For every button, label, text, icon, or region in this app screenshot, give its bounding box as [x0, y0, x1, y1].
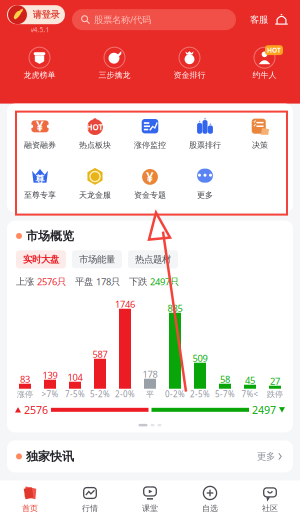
- staticText: 独家快讯: [26, 449, 74, 464]
- staticText: 587: [92, 348, 107, 360]
- staticText: 热点板块: [79, 140, 111, 150]
- staticText: 7%<: [241, 389, 258, 399]
- staticText: 83: [20, 373, 30, 385]
- staticText: 实时大盘: [23, 254, 59, 265]
- button[interactable]: 实时大盘: [16, 250, 66, 268]
- staticText: 至尊专享: [24, 190, 56, 200]
- staticText: 尊: [35, 173, 44, 185]
- staticText: 热点题材: [135, 254, 171, 265]
- staticText: 平盘: [66, 276, 96, 287]
- staticText: 2576: [24, 403, 48, 417]
- staticText: 融资融券: [24, 140, 56, 150]
- button[interactable]: 课堂: [120, 480, 180, 518]
- staticText: 跌停: [267, 389, 283, 399]
- staticText: 行情: [82, 503, 98, 513]
- button[interactable]: 龙虎榜单: [2, 45, 77, 83]
- staticText: 天龙金服: [79, 190, 111, 200]
- staticText: HOT: [86, 122, 103, 132]
- staticText: 0-2%: [165, 389, 185, 399]
- staticText: 2-0%: [115, 389, 135, 399]
- button[interactable]: 资金排行: [152, 45, 227, 83]
- button[interactable]: 天龙金服: [67, 162, 122, 206]
- staticText: 客服: [250, 14, 268, 25]
- staticText: 178只: [96, 275, 120, 288]
- staticText: 龙虎榜单: [23, 70, 55, 80]
- staticText: ¥: [146, 168, 154, 186]
- staticText: 5-2%: [90, 389, 110, 399]
- button[interactable]: 尊: [12, 162, 67, 206]
- button[interactable]: 客服: [250, 14, 268, 25]
- staticText: 更多: [197, 190, 213, 200]
- button[interactable]: 股票排行: [177, 112, 232, 156]
- button[interactable]: Notifications: [275, 13, 288, 27]
- button[interactable]: 社区: [240, 480, 300, 518]
- button[interactable]: ¥: [12, 112, 67, 156]
- staticText: 7-5%: [65, 389, 85, 399]
- staticText: 自选: [202, 503, 218, 513]
- button[interactable]: 更多: [177, 162, 232, 206]
- button[interactable]: 市场能量: [72, 250, 122, 268]
- button[interactable]: 首页: [0, 480, 60, 518]
- staticText: 社区: [262, 503, 278, 513]
- staticText: 三步擒龙: [98, 70, 130, 80]
- staticText: 2497: [252, 403, 276, 417]
- staticText: 首页: [22, 503, 38, 513]
- staticText: 58: [220, 373, 230, 385]
- staticText: 涨停: [17, 389, 33, 399]
- staticText: >7%: [41, 389, 58, 399]
- staticText: 股票排行: [189, 140, 221, 150]
- staticText: 上涨: [16, 276, 37, 287]
- staticText: v4.5.1: [30, 25, 49, 34]
- staticText: 涨停监控: [134, 140, 166, 150]
- staticText: 市场能量: [79, 254, 115, 265]
- button[interactable]: ¥: [122, 162, 177, 206]
- staticText: 885: [167, 302, 182, 314]
- staticText: 股票名称/代码: [94, 13, 151, 26]
- staticText: 下跌: [120, 276, 150, 287]
- staticText: 课堂: [142, 503, 158, 513]
- staticText: 178: [142, 368, 157, 380]
- button[interactable]: 自选: [180, 480, 240, 518]
- button[interactable]: 决策: [232, 112, 287, 156]
- staticText: 139: [42, 369, 57, 381]
- staticText: 请登录: [32, 9, 59, 20]
- button[interactable]: HOT: [67, 112, 122, 156]
- button[interactable]: 更多: [257, 451, 283, 462]
- staticText: ¥: [36, 117, 44, 135]
- staticText: 资金专题: [134, 190, 166, 200]
- staticText: 市场概览: [26, 229, 74, 243]
- button[interactable]: 三步擒龙: [77, 45, 152, 83]
- staticText: 5-7%: [215, 389, 235, 399]
- staticText: 资金排行: [173, 70, 205, 80]
- button[interactable]: 股票名称/代码: [72, 9, 236, 30]
- button[interactable]: 行情: [60, 480, 120, 518]
- staticText: 45: [245, 374, 255, 386]
- button[interactable]: HOT: [227, 45, 300, 83]
- staticText: 1746: [115, 298, 135, 310]
- button[interactable]: 涨停监控: [122, 112, 177, 156]
- staticText: 决策: [252, 140, 268, 150]
- staticText: 27: [270, 375, 280, 387]
- staticText: 104: [67, 371, 82, 383]
- staticText: 2497只: [150, 275, 179, 288]
- staticText: 更多: [257, 451, 275, 462]
- button[interactable]: 请登录: [7, 5, 65, 35]
- button[interactable]: 热点题材: [128, 250, 178, 268]
- staticText: 2-5%: [190, 389, 210, 399]
- staticText: 2576只: [37, 275, 66, 288]
- staticText: 509: [192, 352, 207, 364]
- staticText: 约牛人: [252, 70, 276, 80]
- staticText: 平: [146, 389, 154, 399]
- staticText: HOT: [267, 46, 281, 55]
